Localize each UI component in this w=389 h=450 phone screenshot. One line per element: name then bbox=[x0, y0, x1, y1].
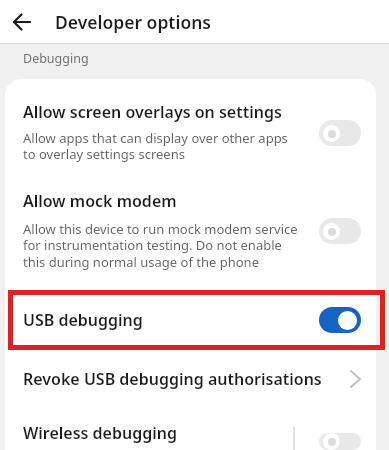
staticText: Wireless debugging bbox=[23, 422, 177, 444]
button[interactable] bbox=[319, 120, 361, 146]
staticText: Allow mock modem bbox=[23, 190, 177, 212]
button[interactable] bbox=[0, 0, 43, 43]
staticText: Revoke USB debugging authorisations bbox=[23, 368, 349, 390]
staticText: Developer options bbox=[55, 10, 211, 34]
button[interactable] bbox=[319, 307, 361, 333]
button[interactable] bbox=[319, 433, 361, 450]
button[interactable] bbox=[319, 218, 361, 244]
button[interactable]: Allow screen overlays on settings bbox=[5, 79, 376, 176]
staticText: Allow screen overlays on settings bbox=[23, 101, 282, 123]
button[interactable]: USB debugging bbox=[5, 290, 376, 350]
button[interactable]: Revoke USB debugging authorisations bbox=[5, 350, 376, 407]
staticText: Allow this device to run mock modem serv… bbox=[23, 220, 298, 271]
button[interactable]: Allow mock modem bbox=[5, 176, 376, 290]
button[interactable]: Wireless debugging bbox=[5, 407, 376, 450]
staticText: Allow apps that can display over other a… bbox=[23, 129, 288, 163]
staticText: Debugging bbox=[23, 50, 89, 67]
staticText: USB debugging bbox=[23, 309, 319, 331]
